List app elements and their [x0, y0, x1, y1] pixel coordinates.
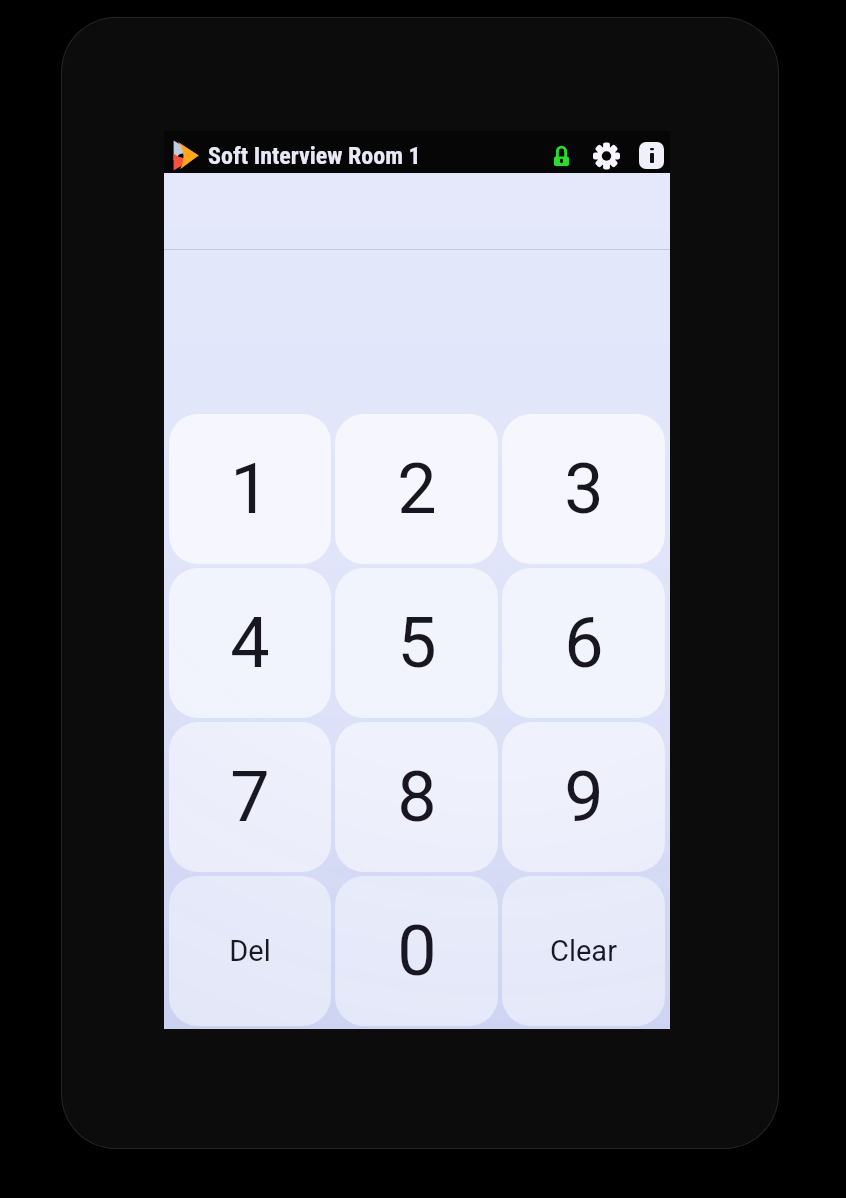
staticText: 9 [564, 756, 604, 838]
button[interactable]: 1 [169, 414, 331, 564]
button[interactable]: 9 [502, 722, 665, 872]
staticText: Del [229, 934, 271, 968]
button[interactable]: Settings [579, 138, 633, 173]
staticText: Clear [550, 934, 617, 968]
staticText: Soft Interview Room 1 [208, 142, 421, 170]
button[interactable]: 0 [335, 876, 498, 1026]
staticText: 4 [230, 602, 270, 684]
staticText: 2 [397, 448, 437, 530]
staticText: 5 [397, 602, 437, 684]
staticText: 8 [397, 756, 437, 838]
button[interactable]: 3 [502, 414, 665, 564]
button[interactable]: Info [633, 138, 670, 173]
button[interactable]: Lock [543, 138, 579, 173]
button[interactable]: 2 [335, 414, 498, 564]
button[interactable]: 5 [335, 568, 498, 718]
staticText: 6 [564, 602, 604, 684]
staticText: 1 [230, 448, 270, 530]
staticText: 0 [397, 910, 437, 992]
button[interactable]: 6 [502, 568, 665, 718]
button[interactable]: 4 [169, 568, 331, 718]
staticText: 3 [564, 448, 604, 530]
button[interactable]: 7 [169, 722, 331, 872]
staticText: 7 [230, 756, 270, 838]
button[interactable]: Clear [502, 876, 665, 1026]
button[interactable]: 8 [335, 722, 498, 872]
button[interactable]: Del [169, 876, 331, 1026]
